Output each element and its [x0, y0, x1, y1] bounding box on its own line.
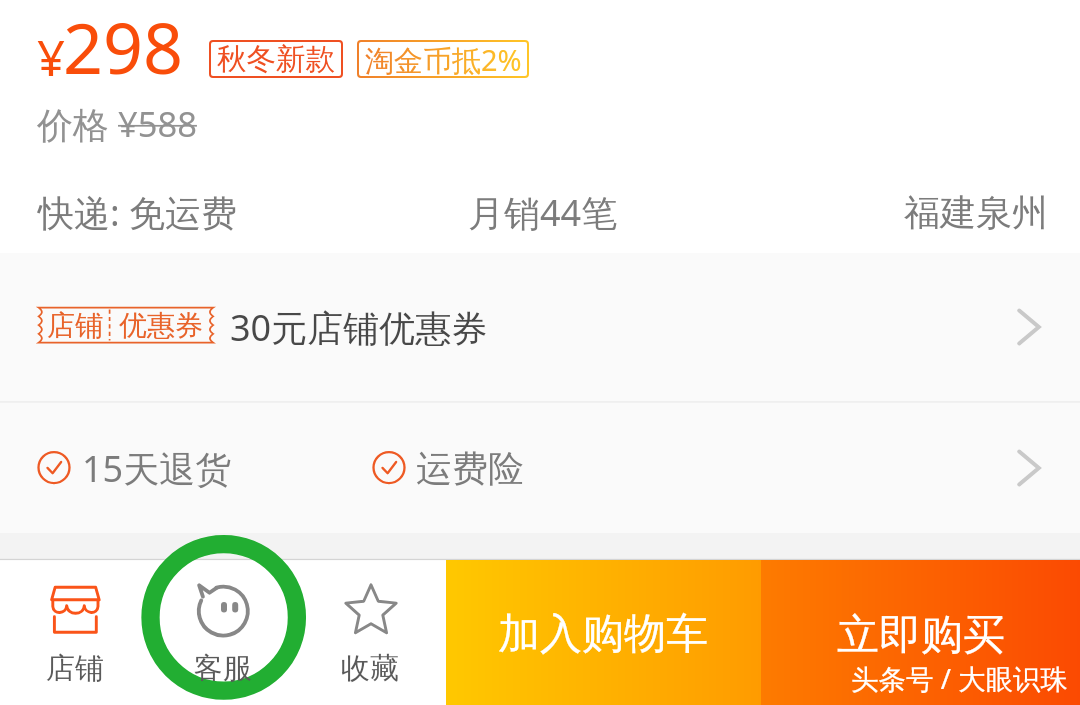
staticText: 价格: [37, 103, 109, 148]
staticText: 福建泉州: [904, 190, 1048, 235]
staticText: ¥: [37, 24, 66, 91]
button[interactable]: 立即购买: [761, 563, 1080, 705]
staticText: 快递: 免运费: [38, 188, 238, 237]
staticText: 30元店铺优惠券: [230, 303, 488, 352]
button[interactable]: 店铺: [0, 560, 148, 705]
button[interactable]: 15天退货: [0, 403, 1080, 533]
staticText: 优惠券: [119, 308, 203, 343]
staticText: 店铺: [46, 650, 104, 687]
button[interactable]: 淘金币抵2%: [357, 40, 529, 78]
staticText: ¥588: [118, 100, 197, 147]
staticText: 运费险: [416, 446, 524, 491]
staticText: 立即购买: [837, 609, 1005, 662]
staticText: 298: [63, 0, 184, 89]
button[interactable]: 客服: [148, 560, 296, 705]
staticText: 店铺: [47, 308, 103, 343]
button[interactable]: 收藏: [297, 560, 445, 705]
button[interactable]: 秋冬新款: [209, 40, 343, 78]
staticText: 加入购物车: [498, 608, 708, 661]
button[interactable]: 加入购物车: [445, 562, 760, 705]
button[interactable]: 店铺: [0, 254, 1080, 401]
staticText: 收藏: [341, 650, 399, 687]
staticText: 淘金币抵2%: [365, 40, 522, 78]
staticText: 月销44笔: [468, 188, 618, 237]
staticText: 秋冬新款: [217, 41, 335, 78]
staticText: 头条号 / 大眼识珠: [851, 660, 1069, 698]
staticText: 客服: [194, 650, 252, 687]
staticText: 15天退货: [82, 444, 232, 493]
